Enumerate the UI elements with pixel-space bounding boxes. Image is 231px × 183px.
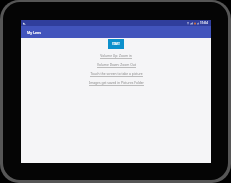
staticText: Images get saved in Pictures Folder xyxy=(89,80,144,84)
staticText: Volume Down: Zoom Out xyxy=(97,62,136,66)
staticText: START xyxy=(112,42,120,46)
staticText: My Lens xyxy=(27,30,42,35)
staticText: 11:04 xyxy=(200,21,208,25)
staticText: Touch the screen to take a picture xyxy=(90,71,143,75)
staticText: Volume Up: Zoom in xyxy=(100,53,132,57)
button[interactable]: START xyxy=(108,39,124,49)
